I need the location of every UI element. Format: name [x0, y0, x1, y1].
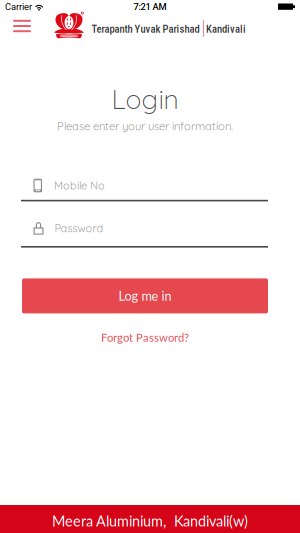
- button[interactable]: Mobile No: [0, 177, 300, 201]
- staticText: 7:21 AM: [133, 1, 166, 12]
- staticText: Meera Aluminium, Kandivali(w): [52, 512, 248, 530]
- staticText: Carrier: [5, 1, 32, 12]
- staticText: Forgot Password?: [101, 331, 189, 344]
- staticText: Please enter your user information.: [57, 119, 233, 133]
- button[interactable]: Log me in: [22, 278, 268, 313]
- button[interactable]: Forgot Password?: [101, 313, 189, 345]
- staticText: Terapanth Yuvak Parishad: [91, 23, 199, 35]
- staticText: Kandivali: [206, 23, 246, 35]
- staticText: Mobile No: [54, 179, 105, 192]
- button[interactable]: Kandivali: [206, 23, 246, 35]
- staticText: Log me in: [118, 288, 171, 303]
- button[interactable]: [9, 16, 35, 36]
- staticText: Password: [54, 221, 103, 235]
- button[interactable]: Password: [0, 220, 300, 248]
- staticText: Login: [111, 82, 178, 116]
